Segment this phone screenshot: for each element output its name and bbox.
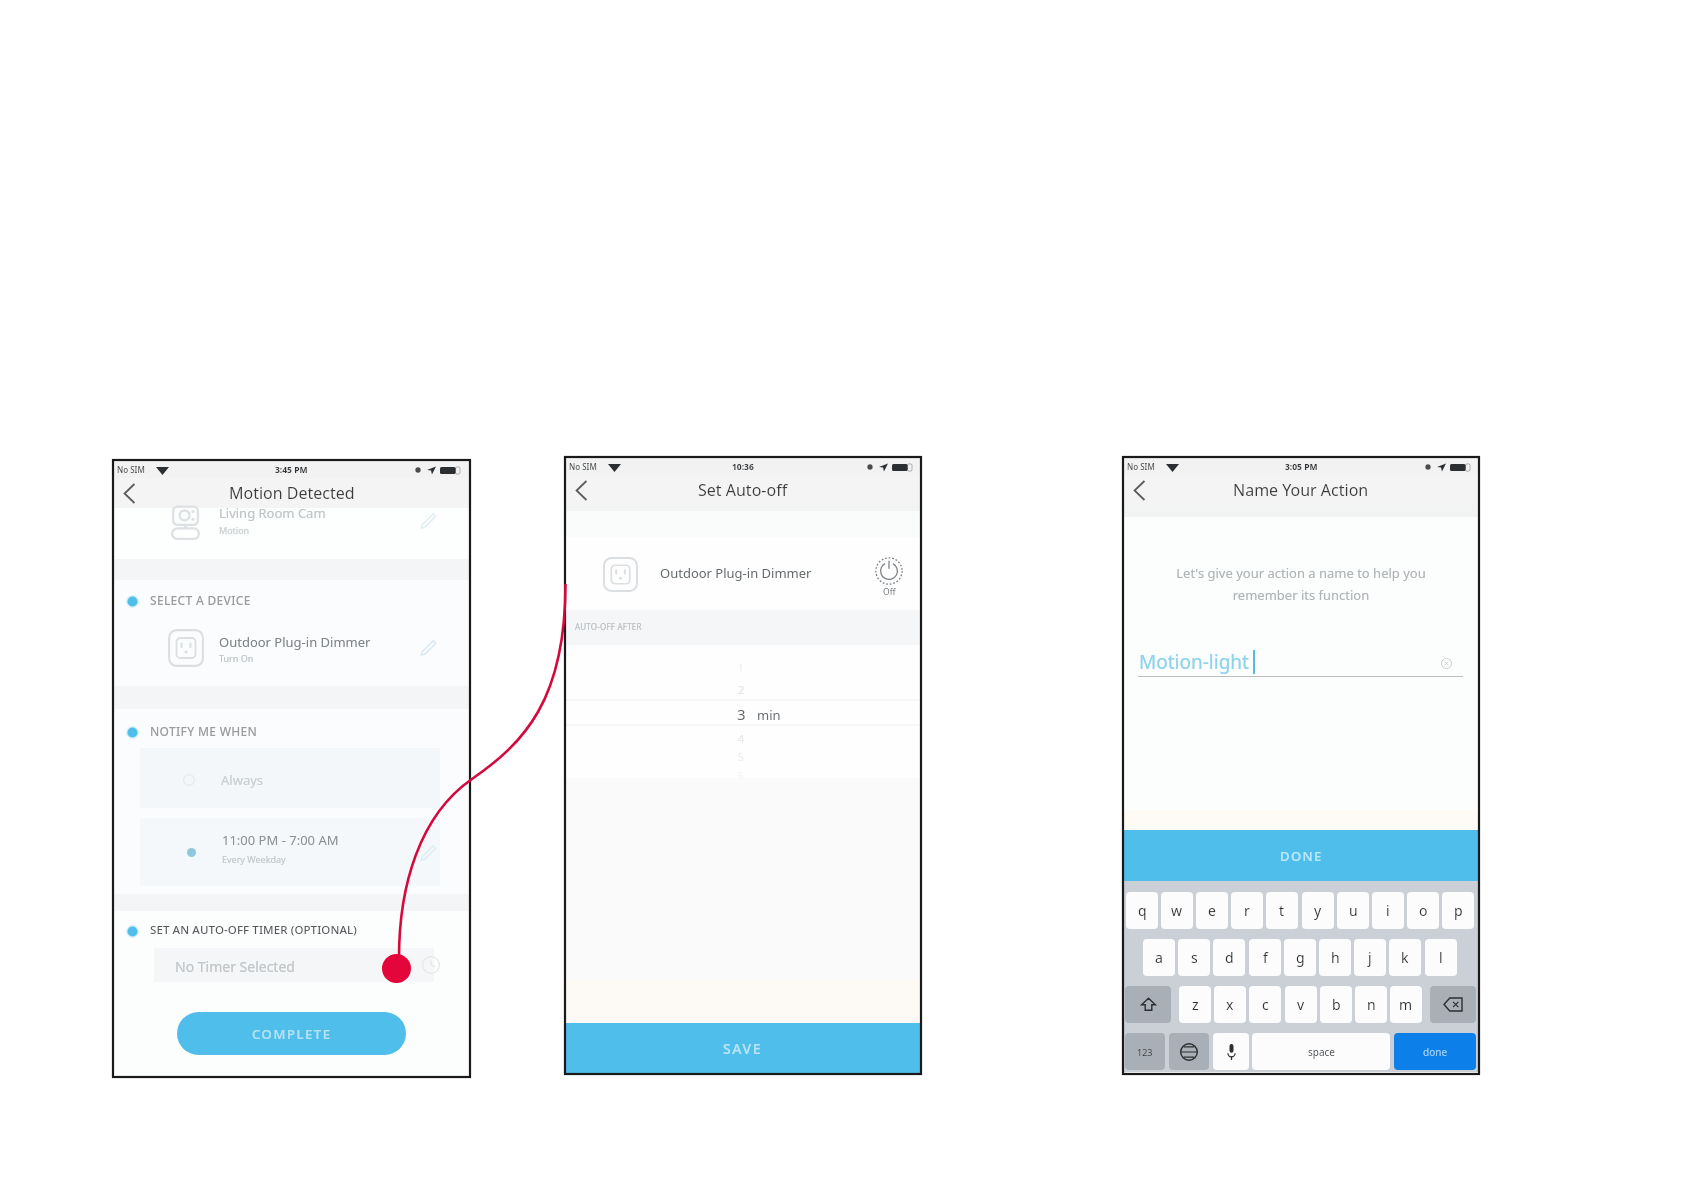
staticText: Outdoor Plug-in Dimmer (660, 564, 812, 582)
staticText: Name Your Action (1233, 479, 1369, 501)
staticText: NOTIFY ME WHEN (150, 723, 258, 739)
button[interactable]: Back (114, 478, 144, 508)
staticText: Every Weekday (222, 853, 286, 865)
staticText: d (1225, 948, 1234, 967)
staticText: Off (883, 586, 896, 598)
button[interactable]: Set timer (419, 953, 443, 977)
button[interactable]: 123 (1125, 1033, 1165, 1070)
staticText: Always (221, 771, 264, 789)
button[interactable]: u (1337, 892, 1369, 929)
button[interactable]: b (1320, 986, 1352, 1023)
button[interactable] (140, 748, 440, 808)
button[interactable]: Edit schedule (416, 840, 441, 865)
button[interactable]: p (1442, 892, 1474, 929)
staticText: COMPLETE (252, 1025, 332, 1043)
button[interactable]: SAVE (566, 1023, 920, 1073)
staticText: SET AN AUTO-OFF TIMER (OPTIONAL) (150, 922, 358, 938)
button[interactable]: Toggle power, currently Off (869, 553, 909, 599)
button[interactable] (154, 948, 434, 982)
button[interactable] (114, 505, 468, 557)
button[interactable]: c (1249, 986, 1281, 1023)
staticText: No SIM (569, 461, 597, 472)
button[interactable] (114, 621, 468, 675)
button[interactable]: Back (566, 475, 596, 505)
staticText: t (1279, 901, 1285, 920)
staticText: e (1208, 901, 1216, 920)
staticText: f (1263, 948, 1268, 967)
staticText: 6 (738, 769, 744, 781)
staticText: 1 (738, 661, 744, 675)
staticText: h (1331, 948, 1340, 967)
button[interactable]: l (1425, 939, 1457, 976)
button[interactable]: Change language (1169, 1033, 1209, 1070)
staticText: 3:05 PM (1285, 461, 1318, 473)
button[interactable]: h (1319, 939, 1351, 976)
button[interactable]: j (1354, 939, 1386, 976)
staticText: b (1332, 995, 1341, 1014)
staticText: 4 (738, 731, 745, 746)
staticText: y (1314, 901, 1322, 920)
staticText: SELECT A DEVICE (150, 592, 251, 608)
button[interactable]: q (1126, 892, 1158, 929)
button[interactable]: s (1178, 939, 1210, 976)
button[interactable] (1138, 646, 1428, 682)
staticText: a (1155, 948, 1163, 967)
staticText: 123 (1137, 1046, 1153, 1058)
staticText: 3 (737, 704, 746, 724)
staticText: Outdoor Plug-in Dimmer (219, 633, 371, 651)
button[interactable]: n (1355, 986, 1387, 1023)
button[interactable]: i (1372, 892, 1404, 929)
staticText: 10:36 (732, 461, 754, 473)
button[interactable]: x (1214, 986, 1246, 1023)
button[interactable]: z (1179, 986, 1211, 1023)
button[interactable]: Edit trigger (416, 508, 441, 533)
button[interactable]: v (1285, 986, 1317, 1023)
button[interactable]: done (1394, 1033, 1476, 1070)
staticText: AUTO-OFF AFTER (575, 621, 642, 632)
staticText: j (1368, 948, 1372, 967)
staticText: space (1308, 1045, 1335, 1059)
staticText: No SIM (1127, 461, 1155, 472)
button[interactable]: d (1213, 939, 1245, 976)
button[interactable]: k (1389, 939, 1421, 976)
staticText: l (1439, 948, 1443, 967)
button[interactable]: f (1249, 939, 1281, 976)
staticText: v (1297, 995, 1305, 1014)
button[interactable] (566, 540, 856, 610)
button[interactable]: a (1143, 939, 1175, 976)
staticText: m (1399, 995, 1413, 1014)
button[interactable]: Back (1124, 475, 1154, 505)
button[interactable]: t (1266, 892, 1298, 929)
staticText: u (1349, 901, 1358, 920)
staticText: z (1192, 995, 1199, 1014)
staticText: k (1401, 948, 1409, 967)
button[interactable]: o (1407, 892, 1439, 929)
button[interactable]: Dictate (1213, 1033, 1249, 1070)
button[interactable]: DONE (1124, 830, 1478, 881)
button[interactable]: r (1231, 892, 1263, 929)
staticText: No Timer Selected (175, 957, 295, 976)
staticText: n (1367, 995, 1376, 1014)
button[interactable]: w (1161, 892, 1193, 929)
button[interactable]: COMPLETE (177, 1012, 406, 1055)
button[interactable]: Backspace (1430, 986, 1476, 1023)
staticText: 3:45 PM (275, 464, 308, 476)
button[interactable]: Shift (1125, 986, 1171, 1023)
button[interactable]: space (1252, 1033, 1390, 1070)
staticText: 2 (738, 682, 745, 697)
staticText: 5 (738, 750, 744, 764)
staticText: w (1171, 901, 1183, 920)
staticText: s (1191, 948, 1198, 967)
button[interactable] (140, 818, 440, 886)
button[interactable]: e (1196, 892, 1228, 929)
button[interactable]: g (1284, 939, 1316, 976)
staticText: g (1296, 948, 1305, 967)
staticText: Turn On (219, 652, 254, 664)
button[interactable]: Clear text (1436, 653, 1457, 674)
button[interactable]: y (1302, 892, 1334, 929)
staticText: o (1419, 901, 1428, 920)
button[interactable]: m (1390, 986, 1422, 1023)
staticText: done (1423, 1045, 1448, 1059)
button[interactable]: Edit device (416, 635, 441, 660)
staticText: No SIM (117, 464, 145, 475)
